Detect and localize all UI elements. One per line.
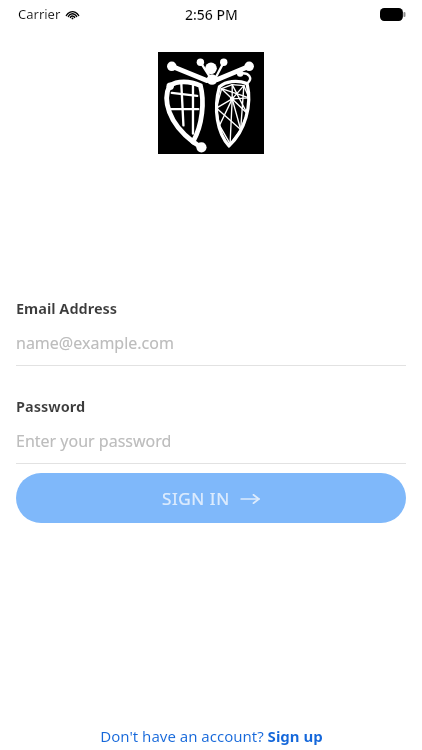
button[interactable]: SIGN IN — [16, 473, 406, 523]
staticText: Email Address — [16, 298, 118, 318]
staticText: Carrier — [18, 5, 61, 23]
button[interactable]: Don't have an account? Sign up — [0, 726, 422, 746]
staticText: name@example.com — [16, 332, 174, 354]
staticText: 2:56 PM — [185, 5, 238, 24]
staticText: Password — [16, 396, 86, 416]
staticText: Enter your password — [16, 430, 172, 452]
button[interactable]: name@example.com — [16, 332, 406, 366]
staticText: Don't have an account? Sign up — [100, 726, 323, 746]
button[interactable]: Enter your password — [16, 430, 406, 464]
staticText: SIGN IN — [162, 487, 230, 510]
